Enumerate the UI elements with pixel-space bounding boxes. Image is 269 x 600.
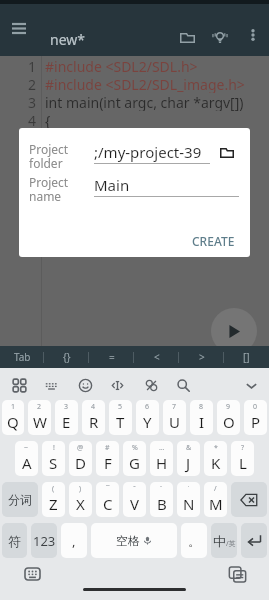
staticText: M — [209, 494, 223, 514]
staticText: ! — [53, 443, 55, 453]
button[interactable]: # — [96, 441, 119, 476]
button[interactable]: Suggestions — [204, 21, 236, 53]
staticText: H — [156, 453, 168, 473]
staticText: 8 — [199, 402, 204, 412]
button[interactable]: Keyboard themes — [39, 373, 63, 397]
staticText: 分词 — [8, 492, 32, 507]
button[interactable]: < — [134, 346, 179, 368]
staticText: ) — [79, 484, 82, 494]
button[interactable]: [] — [224, 346, 269, 368]
button[interactable]: 4 — [82, 400, 105, 435]
staticText: ( — [52, 484, 55, 494]
staticText: [] — [243, 350, 250, 364]
button[interactable]: 分词 — [2, 482, 38, 517]
button[interactable]: 9 — [217, 400, 240, 435]
button[interactable]: 1 — [2, 400, 24, 435]
staticText: # — [105, 443, 110, 453]
button[interactable]: More options — [239, 21, 267, 49]
button[interactable]: Emoji — [73, 373, 97, 397]
button[interactable]: ¨ — [150, 482, 173, 517]
button[interactable]: 3 — [55, 400, 78, 435]
staticText: #include <SDL2/SDL.h> — [45, 57, 198, 75]
staticText: K — [211, 453, 221, 473]
button[interactable]: Open file — [171, 21, 203, 53]
button[interactable]: Collapse keyboard — [239, 373, 263, 397]
staticText: R — [89, 412, 99, 432]
button[interactable]: ( — [42, 482, 65, 517]
staticText: V — [130, 494, 140, 514]
staticText: 3 — [64, 402, 69, 412]
button[interactable]: 8 — [190, 400, 213, 435]
staticText: #include <SDL2/SDL_image.h> — [45, 75, 245, 93]
staticText: = — [109, 350, 115, 364]
button[interactable]: ) — [69, 482, 92, 517]
staticText: 7 — [172, 402, 177, 412]
button[interactable]: 0 — [244, 400, 267, 435]
staticText: / — [214, 484, 217, 494]
button[interactable]: Text editing — [105, 373, 129, 397]
button[interactable]: * — [204, 441, 227, 476]
button[interactable]: ? — [231, 441, 254, 476]
button[interactable]: Switch input method — [8, 558, 56, 600]
button[interactable]: 中 — [211, 523, 237, 558]
button[interactable]: Sticker keyboard — [7, 373, 31, 397]
button[interactable]: , — [61, 523, 87, 558]
button[interactable]: 6 — [136, 400, 159, 435]
button[interactable]: % — [123, 441, 146, 476]
button[interactable]: Backspace — [231, 482, 267, 517]
staticText: /英 — [226, 539, 236, 549]
staticText: , — [72, 532, 76, 550]
staticText: 5 — [118, 402, 123, 412]
staticText: O — [223, 412, 235, 432]
button[interactable]: 5 — [109, 400, 132, 435]
staticText: ¯ — [106, 484, 110, 494]
button[interactable]: 。 — [181, 523, 207, 558]
button[interactable]: ~ — [15, 441, 38, 476]
button[interactable]: … — [150, 441, 173, 476]
staticText: U — [169, 412, 180, 432]
button[interactable]: @ — [69, 441, 92, 476]
button[interactable]: Tab — [0, 346, 44, 368]
staticText: N — [183, 494, 195, 514]
button[interactable]: / — [204, 482, 227, 517]
staticText: ;/my-project-39 — [94, 142, 202, 162]
button[interactable]: & — [177, 441, 200, 476]
button[interactable]: Clipboard — [139, 373, 163, 397]
button[interactable]: Browse folders — [213, 139, 241, 165]
staticText: ˙ — [188, 484, 190, 494]
button[interactable]: = — [89, 346, 134, 368]
staticText: E — [62, 412, 71, 432]
button[interactable]: 7 — [163, 400, 186, 435]
button[interactable]: 2 — [28, 400, 51, 435]
staticText: 4 — [28, 111, 37, 129]
button[interactable]: ˇ — [123, 482, 146, 517]
staticText: ~ — [24, 443, 29, 453]
button[interactable]: 空格 — [91, 523, 177, 558]
button[interactable]: Search — [171, 373, 195, 397]
staticText: 1 — [28, 57, 37, 75]
button[interactable]: ¯ — [96, 482, 119, 517]
staticText: ˇ — [133, 484, 136, 494]
staticText: … — [159, 443, 165, 453]
staticText: 4 — [91, 402, 96, 412]
button[interactable]: Recent apps — [213, 558, 261, 600]
staticText: @ — [77, 443, 84, 453]
button[interactable]: 符 — [2, 523, 27, 558]
button[interactable]: Run — [211, 308, 257, 354]
staticText: 2 — [37, 402, 42, 412]
staticText: % — [132, 443, 138, 453]
button[interactable]: 123 — [31, 523, 57, 558]
staticText: G — [129, 453, 140, 473]
button[interactable]: Enter — [241, 523, 267, 558]
button[interactable]: ˙ — [177, 482, 200, 517]
button[interactable]: ! — [42, 441, 65, 476]
button[interactable]: > — [179, 346, 224, 368]
staticText: & — [186, 443, 192, 453]
button[interactable]: CREATE — [184, 226, 243, 256]
staticText: Q — [7, 412, 19, 432]
staticText: Project name — [29, 174, 69, 205]
button[interactable]: {} — [44, 346, 89, 368]
button[interactable]: Navigation menu — [2, 14, 36, 42]
staticText: 3 — [28, 93, 37, 111]
staticText: S — [49, 453, 58, 473]
